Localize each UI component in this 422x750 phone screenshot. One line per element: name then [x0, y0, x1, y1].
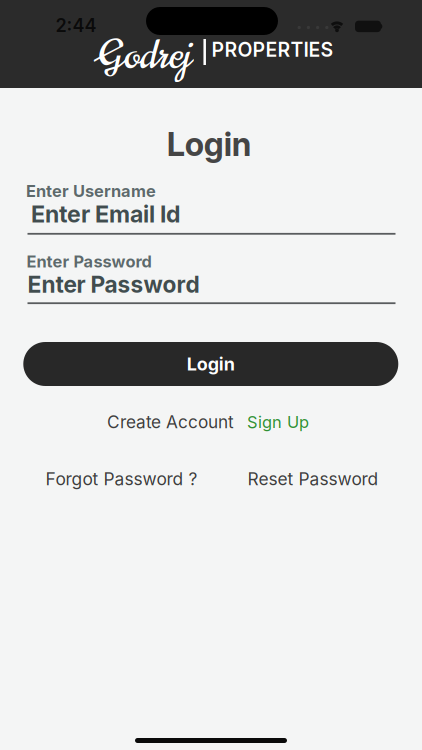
staticText: PROPERTIES — [212, 38, 334, 61]
staticText: Enter Email Id — [31, 200, 180, 228]
staticText: Reset Password — [247, 468, 378, 489]
button[interactable]: Reset Password — [247, 468, 378, 489]
button[interactable]: Forgot Password ? — [45, 468, 197, 489]
staticText: Sign Up — [247, 412, 309, 432]
button[interactable]: Sign Up — [247, 412, 309, 432]
button[interactable]: Enter Password — [27, 271, 199, 298]
staticText: Forgot Password ? — [45, 468, 197, 489]
staticText: Create Account — [107, 412, 234, 432]
staticText: Enter Password — [26, 252, 151, 271]
staticText: Godrej — [96, 28, 191, 82]
staticText: Enter Password — [27, 271, 199, 298]
button[interactable]: Enter Email Id — [31, 200, 180, 228]
staticText: 2:44 — [55, 15, 96, 36]
staticText: Login — [167, 124, 252, 164]
button[interactable]: Login — [23, 342, 398, 386]
staticText: Enter Username — [26, 181, 156, 201]
staticText: Login — [187, 353, 235, 375]
